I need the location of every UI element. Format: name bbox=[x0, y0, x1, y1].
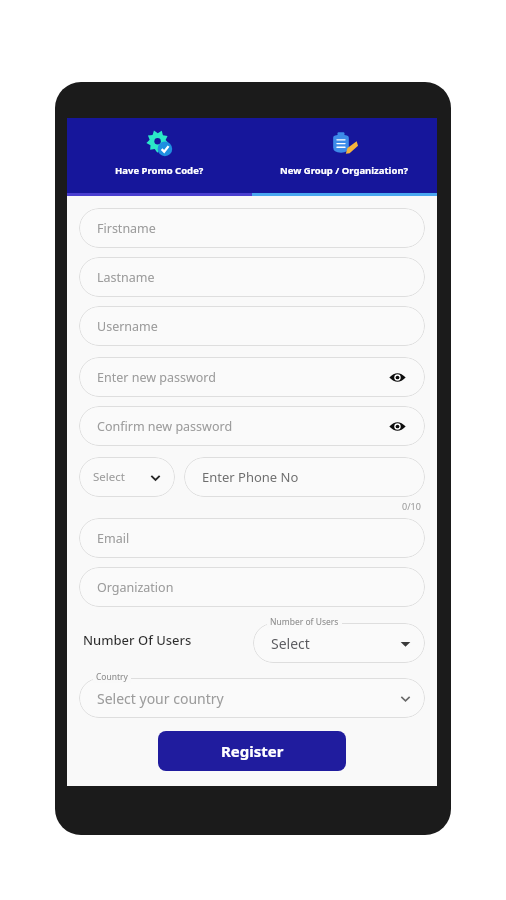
button[interactable]: Select bbox=[253, 616, 425, 663]
staticText: Enter new password bbox=[97, 369, 216, 386]
staticText: Confirm new password bbox=[97, 418, 233, 435]
button[interactable]: Firstname bbox=[79, 208, 425, 248]
staticText: Organization bbox=[97, 579, 174, 596]
other: New group or organization bbox=[331, 130, 358, 157]
button[interactable]: Confirm new password bbox=[79, 406, 425, 446]
button[interactable]: Enter new password bbox=[79, 357, 425, 397]
button[interactable]: Enter Phone No bbox=[184, 457, 425, 497]
button[interactable]: Email bbox=[79, 518, 425, 558]
staticText: 0/10 bbox=[402, 500, 421, 512]
staticText: Number of Users bbox=[270, 616, 339, 628]
staticText: New Group / Organization? bbox=[280, 164, 409, 177]
staticText: Select bbox=[93, 469, 125, 485]
other: Promo code bbox=[146, 130, 173, 157]
staticText: Select bbox=[271, 634, 310, 653]
other: Toggle password visibility bbox=[387, 416, 407, 436]
staticText: Number Of Users bbox=[83, 631, 192, 649]
staticText: Username bbox=[97, 318, 158, 335]
staticText: Firstname bbox=[97, 220, 156, 237]
other: Toggle password visibility bbox=[387, 367, 407, 387]
staticText: Register bbox=[221, 741, 284, 761]
staticText: Email bbox=[97, 530, 130, 547]
button[interactable]: Organization bbox=[79, 567, 425, 607]
button[interactable]: Lastname bbox=[79, 257, 425, 297]
staticText: Lastname bbox=[97, 269, 155, 286]
button[interactable]: Register bbox=[158, 731, 346, 771]
staticText: Have Promo Code? bbox=[115, 164, 204, 177]
button[interactable]: New group or organization bbox=[252, 118, 437, 196]
staticText: Country bbox=[96, 671, 128, 683]
button[interactable]: Username bbox=[79, 306, 425, 346]
button[interactable]: Promo code bbox=[67, 118, 252, 196]
staticText: Select your country bbox=[97, 689, 224, 708]
staticText: Enter Phone No bbox=[202, 468, 299, 486]
button[interactable]: Select your country bbox=[79, 671, 425, 718]
button[interactable]: Select bbox=[79, 457, 175, 497]
